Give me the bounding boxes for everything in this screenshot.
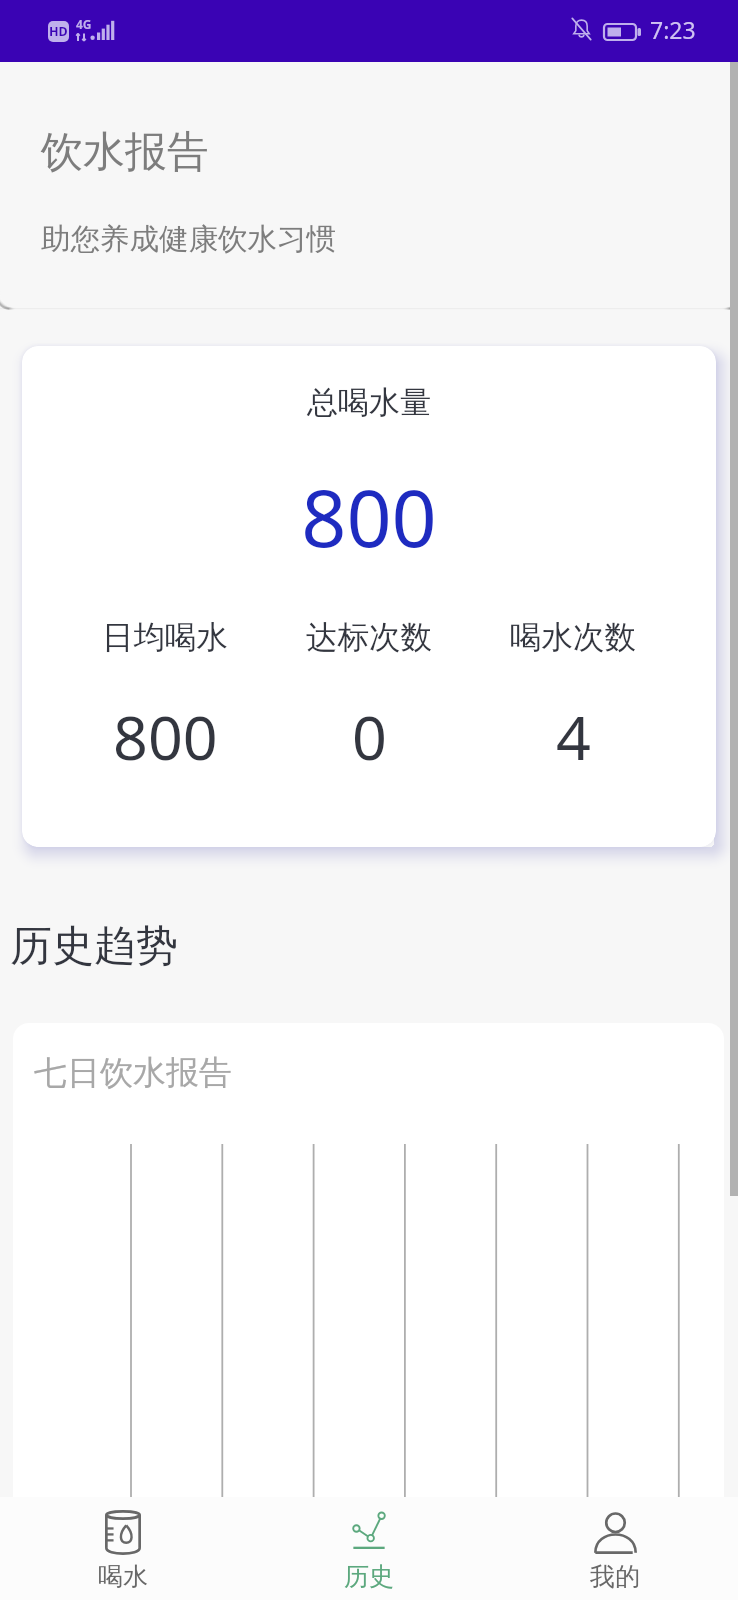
staticText: 助您养成健康饮水习惯 — [41, 221, 336, 258]
staticText: 4 — [556, 695, 591, 778]
staticText: 我的 — [590, 1561, 640, 1592]
staticText: 历史趋势 — [10, 920, 178, 973]
staticText: 4G — [76, 16, 92, 32]
staticText: 达标次数 — [306, 618, 432, 658]
staticText: 饮水报告 — [41, 126, 209, 179]
staticText: 0 — [352, 695, 387, 778]
staticText: 800 — [113, 695, 218, 778]
button[interactable]: 历史 — [246, 1497, 492, 1600]
staticText: 历史 — [344, 1561, 394, 1592]
staticText: HD — [49, 23, 68, 40]
staticText: 总喝水量 — [22, 383, 716, 422]
staticText: 7:23 — [650, 14, 696, 45]
other: Silent mode — [571, 17, 592, 41]
staticText: 喝水 — [98, 1561, 148, 1592]
staticText: 喝水次数 — [510, 618, 636, 658]
staticText: 七日饮水报告 — [34, 1052, 232, 1094]
button[interactable]: 喝水 — [0, 1497, 246, 1600]
button[interactable]: 我的 — [492, 1497, 738, 1600]
staticText: 日均喝水 — [102, 618, 228, 658]
staticText: 800 — [22, 463, 716, 571]
